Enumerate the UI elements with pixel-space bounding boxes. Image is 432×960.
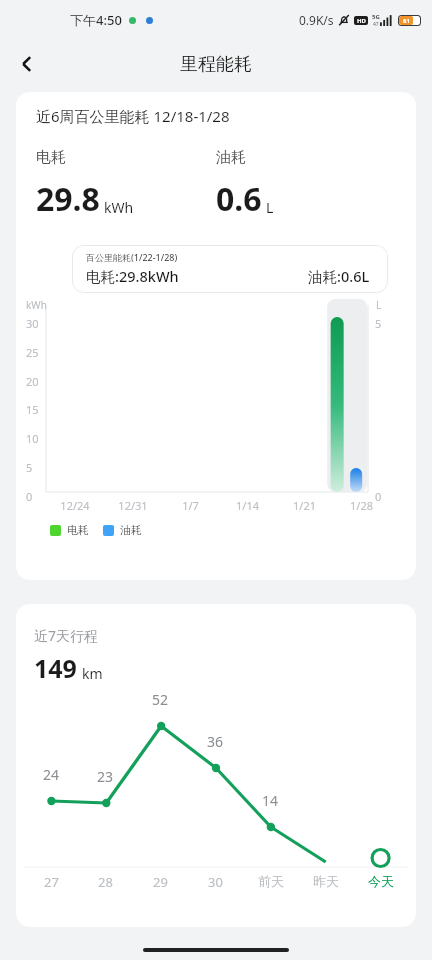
staticText: 15 <box>26 402 39 417</box>
staticText: 149 <box>34 651 77 685</box>
staticText: 25 <box>26 345 39 360</box>
staticText: km <box>82 664 103 683</box>
staticText: 23 <box>97 767 114 786</box>
staticText: 0.6 <box>216 177 262 221</box>
staticText: 近7天行程 <box>34 626 99 645</box>
staticText: 28 <box>98 873 113 891</box>
staticText: 油耗 <box>120 523 142 537</box>
staticText: 0 <box>375 489 382 504</box>
staticText: 24 <box>43 765 60 784</box>
staticText: 0.9K/s <box>299 12 334 28</box>
staticText: 近6周百公里能耗 12/18-1/28 <box>36 106 230 126</box>
staticText: 81 <box>403 17 410 25</box>
staticText: 电耗:29.8kWh <box>86 266 179 286</box>
staticText: 12/24 <box>60 498 90 513</box>
staticText: 20 <box>26 374 39 389</box>
button[interactable]: 近7天行程 <box>16 604 416 927</box>
staticText: 1/7 <box>182 498 199 513</box>
staticText: 今天 <box>368 873 394 889</box>
staticText: 油耗:0.6L <box>308 266 370 286</box>
staticText: kWh <box>104 198 134 217</box>
staticText: HD <box>357 17 366 25</box>
staticText: 29 <box>153 873 168 891</box>
staticText: 27 <box>44 873 59 891</box>
staticText: 昨天 <box>313 873 339 889</box>
staticText: 百公里能耗(1/22-1/28) <box>86 251 178 263</box>
staticText: 14 <box>262 791 279 810</box>
staticText: 5 <box>375 316 382 331</box>
staticText: 电耗 <box>36 148 66 167</box>
staticText: 47 <box>373 21 379 28</box>
button[interactable]: 近6周百公里能耗 12/18-1/28 <box>16 92 416 580</box>
staticText: 下午4:50 <box>70 11 122 29</box>
button[interactable]: Back <box>6 43 48 85</box>
staticText: 油耗 <box>216 148 246 167</box>
staticText: 1/14 <box>236 498 259 513</box>
staticText: 29.8 <box>36 177 100 221</box>
staticText: 0 <box>26 489 33 504</box>
staticText: 前天 <box>258 873 284 889</box>
staticText: kWh <box>26 298 47 312</box>
staticText: 36 <box>207 732 224 751</box>
staticText: 10 <box>26 431 39 446</box>
staticText: 1/28 <box>350 498 373 513</box>
staticText: 12/31 <box>118 498 148 513</box>
staticText: 5G <box>372 13 380 21</box>
staticText: 30 <box>26 316 39 331</box>
staticText: L <box>376 298 382 312</box>
staticText: 5 <box>26 460 33 475</box>
staticText: 电耗 <box>67 523 89 537</box>
staticText: 30 <box>208 873 223 891</box>
staticText: 里程能耗 <box>180 53 252 76</box>
staticText: L <box>266 198 274 217</box>
staticText: 52 <box>152 690 169 709</box>
staticText: 1/21 <box>293 498 316 513</box>
